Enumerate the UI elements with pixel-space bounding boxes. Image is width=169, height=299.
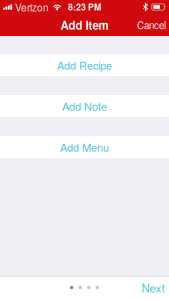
button[interactable]: Add Menu	[0, 136, 169, 158]
staticText: Verizon	[15, 0, 49, 14]
staticText: Next	[141, 279, 164, 296]
staticText: 8:23 PM	[68, 1, 101, 13]
staticText: Add Item	[60, 17, 108, 33]
button[interactable]: Cancel	[131, 14, 169, 36]
button[interactable]: Add Note	[0, 95, 169, 117]
staticText: Cancel	[137, 18, 166, 32]
staticText: Add Recipe	[57, 57, 112, 73]
button[interactable]: Next	[137, 276, 169, 299]
staticText: Add Note	[62, 98, 107, 114]
button[interactable]: Add Recipe	[0, 54, 169, 76]
staticText: Add Menu	[60, 139, 109, 155]
